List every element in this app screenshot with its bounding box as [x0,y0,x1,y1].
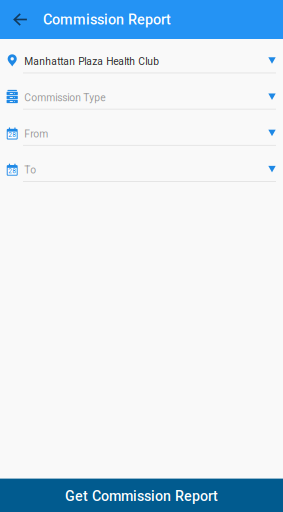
button[interactable]: Back [7,0,33,39]
staticText: Get Commission Report [65,488,218,504]
button[interactable]: 28 [0,111,283,148]
button[interactable]: Get Commission Report [0,479,283,512]
staticText: 28 [8,167,16,175]
staticText: 28 [8,131,16,139]
button[interactable]: 28 [0,148,283,184]
button[interactable]: Commission Type [0,75,283,111]
staticText: Commission Type [24,92,105,104]
button[interactable]: Manhattan Plaza Health Club [0,39,283,75]
staticText: From [24,128,48,140]
staticText: Manhattan Plaza Health Club [24,55,159,67]
staticText: Commission Report [43,11,171,28]
staticText: To [24,164,36,176]
